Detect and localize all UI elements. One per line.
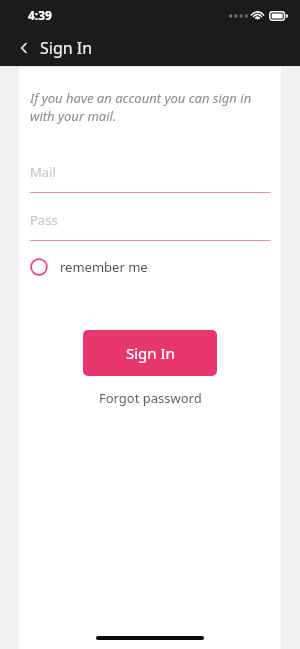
button[interactable]: Mail bbox=[30, 163, 270, 193]
staticText: Sign In bbox=[40, 37, 93, 59]
staticText: remember me bbox=[60, 258, 148, 276]
button[interactable]: remember me bbox=[30, 258, 270, 276]
staticText: Mail bbox=[30, 163, 56, 181]
button[interactable]: Back bbox=[10, 34, 38, 62]
staticText: Pass bbox=[30, 211, 58, 229]
button[interactable]: Sign In bbox=[83, 330, 217, 376]
staticText: Forgot password bbox=[99, 389, 202, 407]
staticText: 4:39 bbox=[28, 7, 52, 23]
button[interactable]: Pass bbox=[30, 211, 270, 241]
staticText: If you have an account you can sign in w… bbox=[30, 89, 270, 125]
staticText: Sign In bbox=[126, 343, 175, 363]
button[interactable]: Forgot password bbox=[93, 387, 208, 409]
